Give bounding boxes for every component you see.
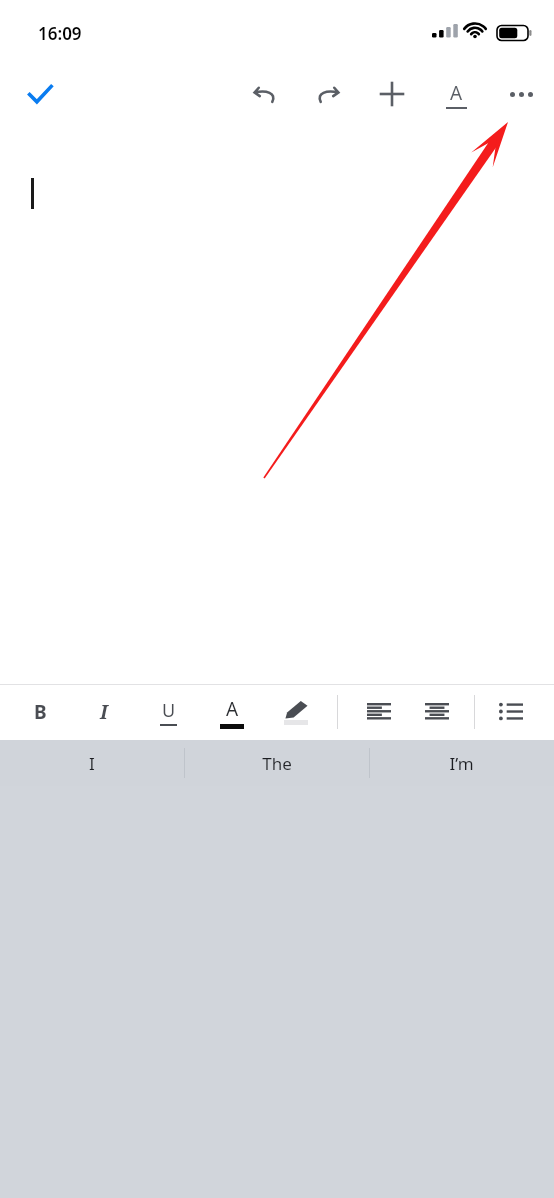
button[interactable]: Redo [305,71,351,117]
button[interactable]: Insert [369,71,415,117]
button[interactable]: Bold [16,687,64,737]
button[interactable]: I’m [381,740,541,786]
button[interactable]: Underline [144,687,192,737]
button[interactable]: Align centre [413,687,461,737]
button[interactable]: More options [498,71,544,117]
button[interactable]: I [12,740,172,786]
staticText: 16:09 [38,22,82,45]
staticText: I [89,752,95,775]
staticText: The [262,752,292,775]
button[interactable]: Done [16,70,64,118]
button[interactable]: Text format [433,71,479,117]
staticText: B [34,699,47,725]
button[interactable]: Undo [242,71,288,117]
button[interactable]: Text colour [208,687,256,737]
staticText: A [226,696,239,722]
staticText: I [100,699,108,725]
button[interactable]: Align left [355,687,403,737]
button[interactable]: The [197,740,357,786]
button[interactable]: Bulleted list [487,687,535,737]
staticText: A [450,80,463,106]
staticText: U [162,698,176,723]
button[interactable]: Italic [80,687,128,737]
staticText: I’m [449,752,474,775]
button[interactable]: Highlight [272,687,320,737]
